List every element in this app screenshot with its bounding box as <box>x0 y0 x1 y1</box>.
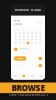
staticText: BROWSE <box>11 82 44 93</box>
button[interactable]: Add workout <box>38 57 42 60</box>
button[interactable]: Tab <box>36 73 45 80</box>
button[interactable]: Tab <box>19 73 28 80</box>
button[interactable]: Tab <box>11 73 19 80</box>
button[interactable]: Tab <box>28 73 36 80</box>
staticText: WORKOUT STUDIO <box>15 8 41 12</box>
button[interactable]: BROWSE <box>0 84 56 92</box>
button[interactable] <box>14 56 26 61</box>
staticText: MAY 2024 <box>14 19 22 26</box>
staticText: YOUR PREVIOUS WORKOUTS <box>8 93 47 97</box>
